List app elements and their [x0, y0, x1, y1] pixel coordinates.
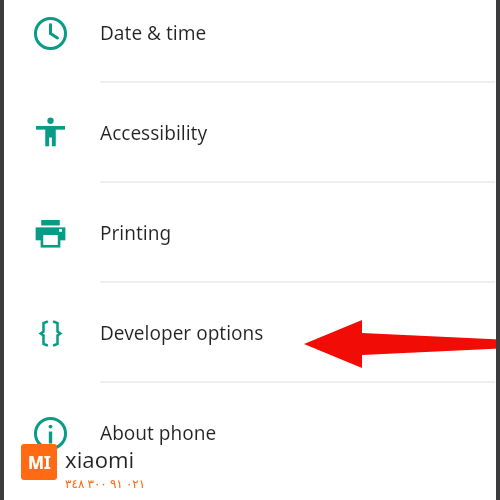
button[interactable]: Date and time	[0, 0, 500, 83]
staticText: xiaomi	[65, 444, 135, 474]
button[interactable]: Developer options	[0, 283, 500, 383]
staticText: About phone	[100, 420, 217, 446]
button[interactable]: Accessibility	[0, 83, 500, 183]
staticText: Printing	[100, 220, 172, 246]
button[interactable]: Printing	[0, 183, 500, 283]
staticText: MI	[28, 451, 51, 474]
staticText: Date & time	[100, 20, 207, 46]
staticText: ٠٢١ ٩١ ٣٠٠ ٣٤٨	[65, 475, 146, 491]
button[interactable]: About phone	[0, 383, 500, 483]
staticText: Accessibility	[100, 120, 208, 146]
staticText: Developer options	[100, 320, 264, 346]
